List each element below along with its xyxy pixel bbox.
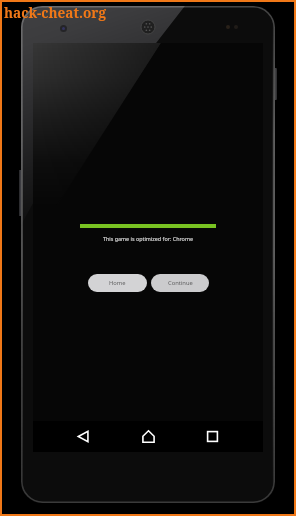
button[interactable]: Home (142, 421, 155, 452)
staticText: hack-cheat.org (4, 3, 106, 22)
button[interactable]: Home (88, 274, 147, 292)
staticText: Continue (168, 279, 193, 287)
button[interactable]: Back (77, 421, 90, 452)
staticText: This game is optimized for: Chrome (103, 235, 193, 242)
button[interactable]: Continue (151, 274, 209, 292)
button[interactable]: Recents (206, 421, 219, 452)
staticText: Home (109, 279, 126, 287)
